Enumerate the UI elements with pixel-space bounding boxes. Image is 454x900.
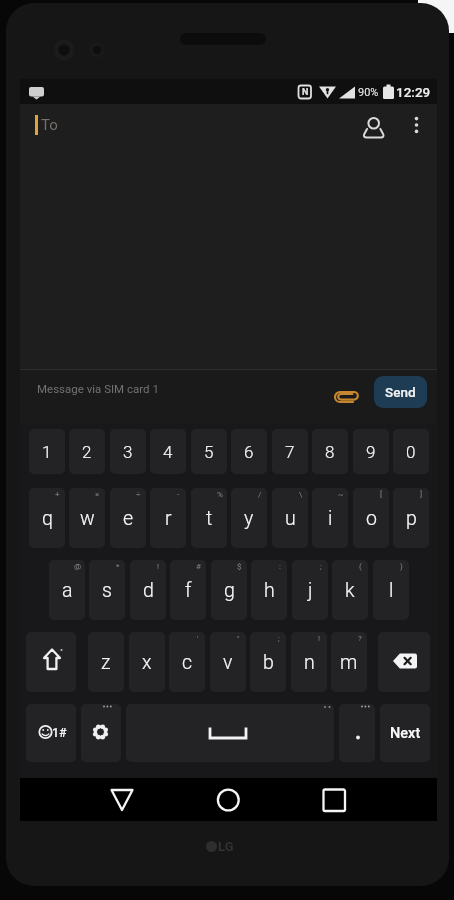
staticText: [	[380, 490, 383, 499]
staticText: g	[224, 579, 235, 602]
staticText: To	[41, 116, 58, 134]
staticText: !	[157, 562, 160, 571]
staticText: h	[264, 579, 275, 602]
staticText: d	[143, 579, 154, 602]
staticText: N	[302, 87, 309, 98]
staticText: 3	[123, 442, 133, 462]
staticText: t	[206, 507, 213, 530]
staticText: \	[299, 490, 303, 499]
staticText: x	[142, 651, 152, 674]
staticText: z	[101, 651, 111, 674]
staticText: 9	[366, 442, 376, 462]
staticText: $	[237, 562, 242, 571]
staticText: n	[304, 651, 315, 674]
staticText: ;	[278, 634, 280, 643]
staticText: 1#	[52, 725, 67, 740]
staticText: (	[359, 562, 362, 571]
staticText: 90%	[358, 86, 379, 99]
staticText: m	[340, 651, 358, 674]
staticText: )	[400, 562, 403, 571]
staticText: Next	[390, 725, 421, 742]
staticText: 12:29	[396, 84, 431, 100]
staticText: #	[196, 562, 201, 571]
staticText: ÷	[136, 490, 141, 499]
staticText: @	[74, 562, 82, 571]
staticText: b	[263, 651, 274, 674]
staticText: r	[165, 507, 172, 530]
staticText: 6	[244, 442, 254, 462]
staticText: ;	[320, 562, 322, 571]
staticText: a	[62, 579, 73, 602]
staticText: ?	[358, 634, 362, 643]
staticText: *	[116, 562, 120, 571]
staticText: +	[55, 490, 60, 499]
staticText: 0	[406, 442, 416, 462]
staticText: Message via SIM card 1	[37, 382, 159, 395]
staticText: e	[123, 507, 134, 530]
staticText: c	[182, 651, 193, 674]
staticText: -	[177, 490, 180, 499]
staticText: w	[80, 507, 95, 530]
staticText: %	[217, 490, 223, 499]
staticText: y	[244, 507, 254, 530]
staticText: :	[279, 562, 281, 571]
staticText: 8	[325, 442, 335, 462]
staticText: '	[197, 634, 199, 643]
staticText: s	[102, 579, 112, 602]
staticText: ~	[338, 490, 344, 499]
staticText: i	[328, 507, 333, 530]
staticText: /	[258, 490, 262, 499]
staticText: k	[345, 579, 355, 602]
staticText: ]	[420, 490, 423, 499]
staticText: 4	[163, 442, 173, 462]
staticText: !	[318, 634, 321, 643]
staticText: 2	[82, 442, 92, 462]
staticText: q	[42, 507, 53, 530]
staticText: p	[406, 507, 417, 530]
staticText: l	[389, 579, 394, 602]
staticText: j	[308, 579, 313, 602]
staticText: 7	[285, 442, 295, 462]
staticText: ×	[95, 490, 100, 499]
staticText: u	[285, 507, 296, 530]
staticText: "	[237, 634, 240, 643]
staticText: 5	[204, 442, 214, 462]
staticText: Send	[385, 384, 416, 400]
staticText: o	[366, 507, 377, 530]
staticText: LG	[218, 839, 234, 854]
staticText: f	[185, 579, 192, 602]
staticText: 1	[42, 442, 52, 462]
staticText: v	[223, 651, 233, 674]
